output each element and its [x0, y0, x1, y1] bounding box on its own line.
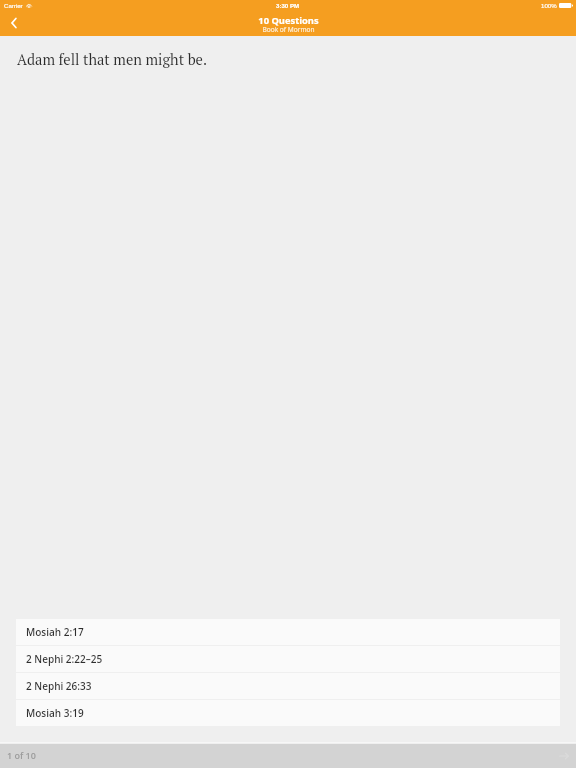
- staticText: 2 Nephi 2:22–25: [26, 652, 103, 666]
- button[interactable]: 2 Nephi 2:22–25: [16, 646, 560, 672]
- staticText: 3:30 PM: [276, 2, 300, 9]
- staticText: Carrier: [4, 2, 23, 9]
- staticText: Book of Mormon: [262, 25, 315, 34]
- staticText: Adam fell that men might be.: [17, 50, 207, 69]
- staticText: 1 of 10: [7, 749, 36, 761]
- staticText: Mosiah 3:19: [26, 706, 84, 720]
- staticText: 10 Questions: [258, 14, 319, 27]
- staticText: 100%: [541, 2, 557, 9]
- staticText: 2 Nephi 26:33: [26, 679, 92, 693]
- staticText: Mosiah 2:17: [26, 625, 84, 639]
- button[interactable]: Mosiah 3:19: [16, 700, 560, 726]
- button[interactable]: Mosiah 2:17: [16, 619, 560, 645]
- button[interactable]: 2 Nephi 26:33: [16, 673, 560, 699]
- button[interactable]: Back: [0, 15, 28, 36]
